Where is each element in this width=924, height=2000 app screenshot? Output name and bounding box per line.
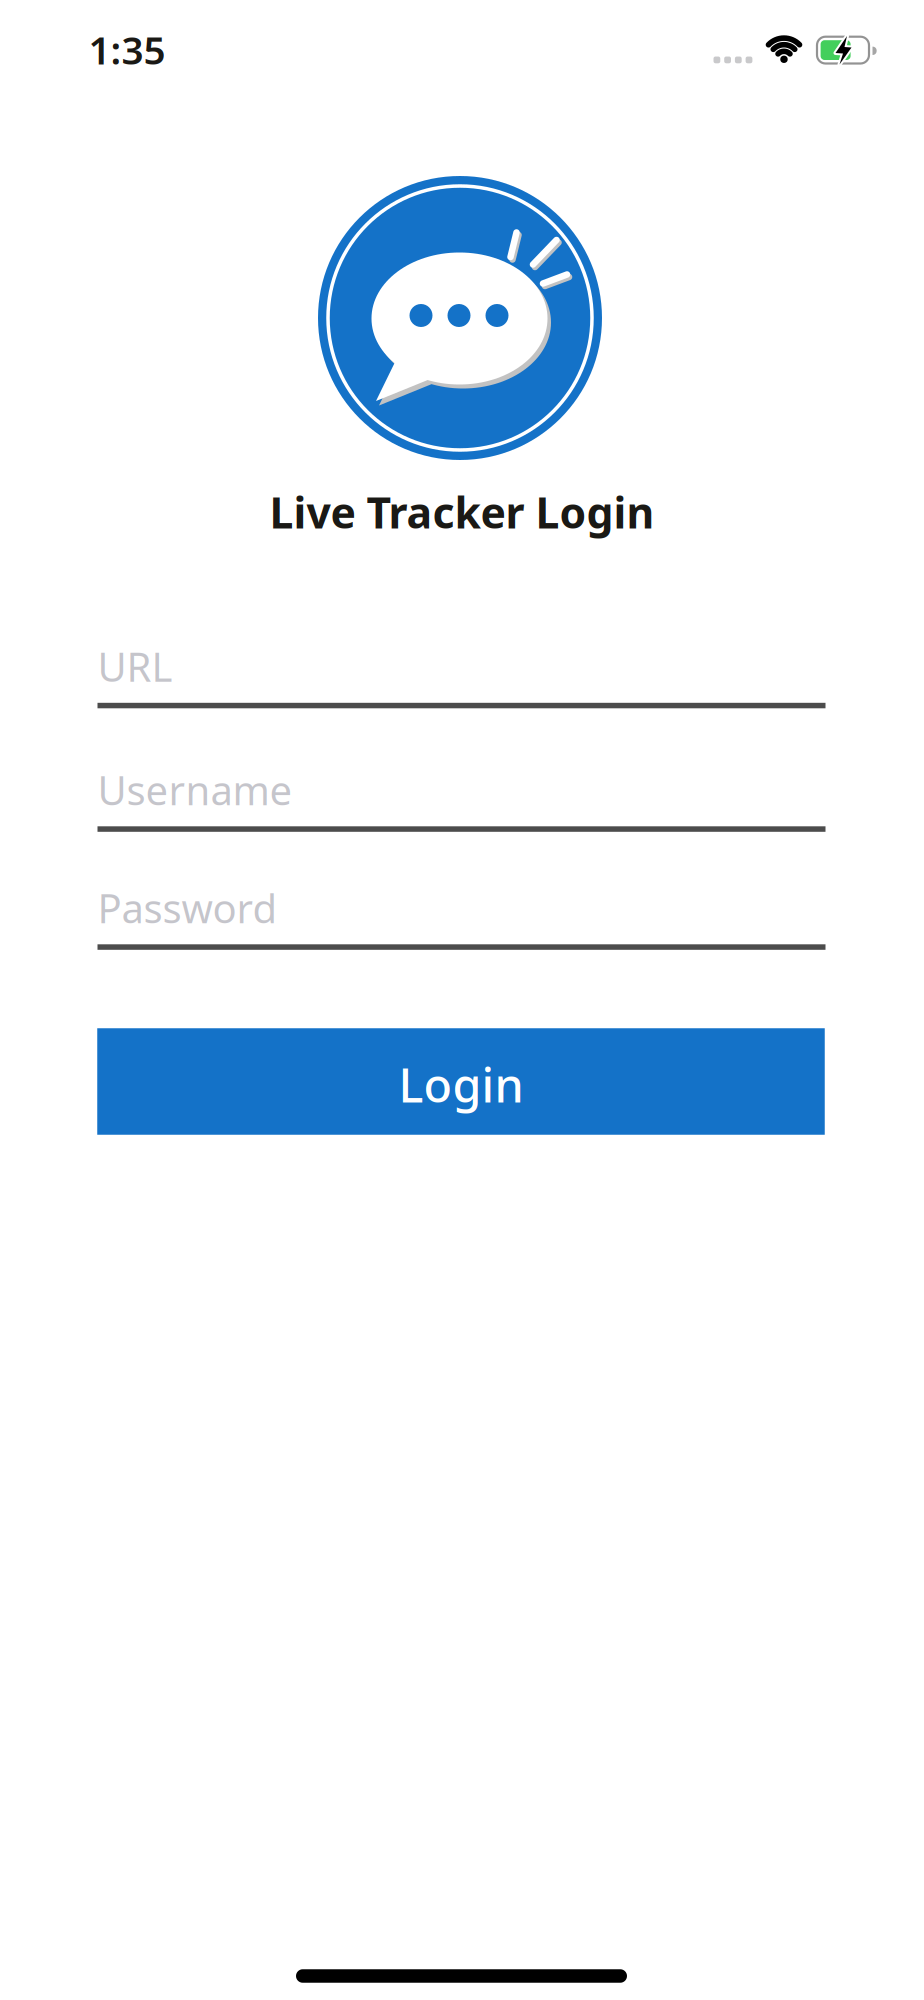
staticText: 1:35 [88, 24, 165, 75]
staticText: Password [97, 881, 277, 934]
staticText: Username [97, 763, 292, 816]
button[interactable]: Login [97, 1028, 825, 1135]
staticText: Login [398, 1053, 523, 1115]
button[interactable]: Username [97, 763, 825, 832]
button[interactable]: URL [97, 640, 825, 708]
staticText: URL [97, 640, 172, 693]
button[interactable]: Password [97, 881, 825, 950]
staticText: Live Tracker Login [269, 484, 654, 540]
